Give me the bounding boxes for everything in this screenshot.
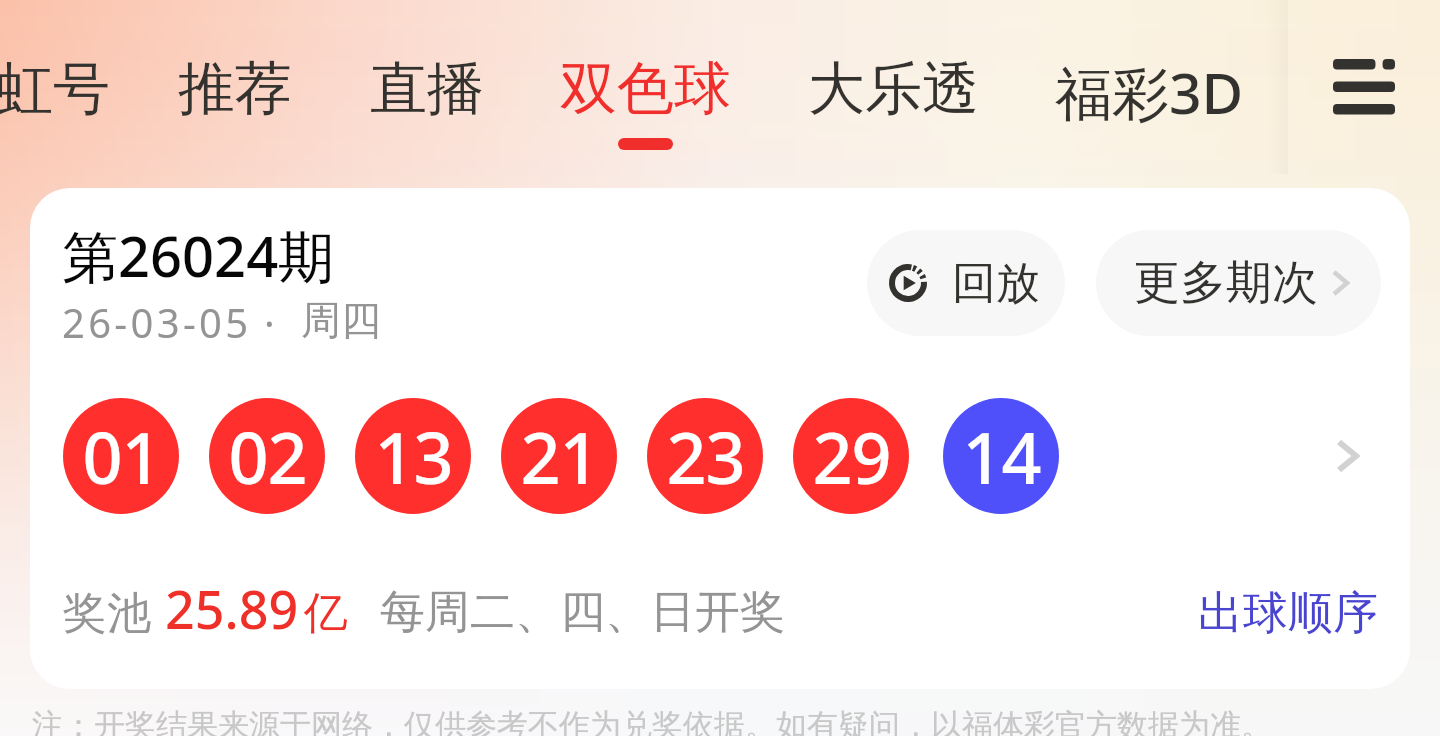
staticText: 直播 [370, 53, 484, 125]
button[interactable]: 虹号 [0, 30, 132, 148]
staticText: 23 [666, 409, 745, 504]
staticText: 14 [962, 409, 1041, 504]
staticText: 25.89 [165, 573, 299, 644]
button[interactable]: 02 [209, 398, 325, 514]
button[interactable]: 福彩3D [1033, 30, 1266, 154]
staticText: 周四 [301, 295, 381, 345]
button[interactable]: 13 [355, 398, 471, 514]
staticText: 第26024期 [62, 217, 335, 293]
button[interactable]: 更多期次 [1096, 230, 1381, 336]
button[interactable]: 直播 [348, 30, 506, 148]
button[interactable]: 14 [943, 398, 1059, 514]
staticText: 双色球 [560, 53, 731, 125]
button[interactable]: 01 [63, 398, 179, 514]
staticText: 21 [520, 409, 599, 504]
button[interactable]: 21 [501, 398, 617, 514]
staticText: 虹号 [0, 53, 110, 125]
staticText: 亿 [304, 586, 348, 641]
staticText: 01 [82, 409, 161, 504]
button[interactable]: More numbers [1289, 398, 1405, 514]
button[interactable]: Menu [1314, 37, 1414, 137]
button[interactable]: 推荐 [156, 30, 314, 148]
button[interactable]: 出球顺序 [1198, 585, 1378, 642]
button[interactable]: 大乐透 [786, 30, 1001, 148]
staticText: 福彩3D [1055, 53, 1244, 131]
staticText: 回放 [952, 256, 1040, 311]
staticText: 注：开奖结果来源于网络，仅供参考不作为兑奖依据。如有疑问，以福体彩官方数据为准。 [32, 706, 1272, 736]
staticText: 更多期次 [1134, 254, 1318, 312]
staticText: 推荐 [178, 53, 292, 125]
staticText: 奖池 [63, 586, 151, 641]
button[interactable]: 回放 [867, 230, 1065, 336]
staticText: 每周二、四、日开奖 [380, 584, 785, 641]
staticText: 13 [374, 409, 453, 504]
button[interactable]: 23 [647, 398, 763, 514]
button[interactable]: 双色球 [538, 30, 753, 173]
button[interactable]: 29 [793, 398, 909, 514]
staticText: 大乐透 [808, 53, 979, 125]
staticText: · [264, 295, 275, 349]
staticText: 02 [228, 409, 307, 504]
staticText: 26-03-05 [62, 295, 252, 349]
staticText: 29 [812, 409, 891, 504]
